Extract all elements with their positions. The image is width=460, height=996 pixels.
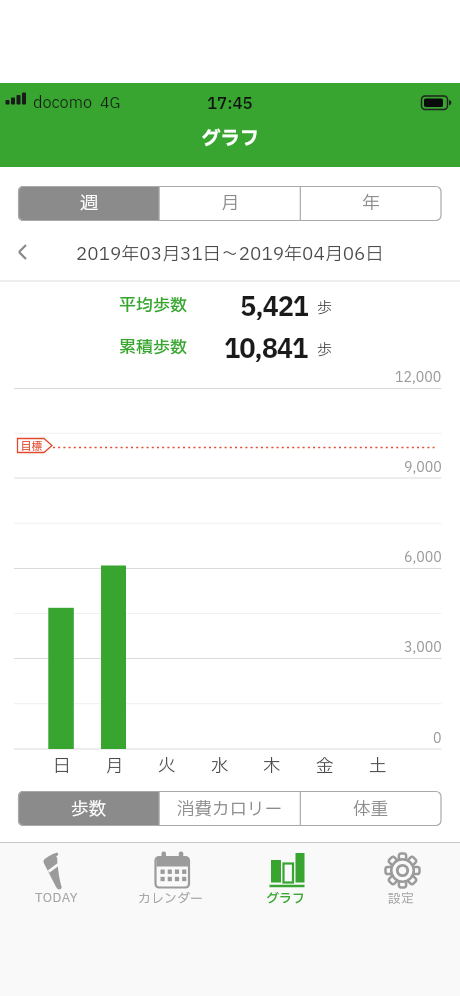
staticText: 9,000 — [404, 458, 442, 478]
staticText: 3,000 — [404, 638, 442, 658]
staticText: TODAY — [35, 889, 79, 904]
staticText: 10,841 — [224, 330, 308, 365]
staticText: 体重 — [353, 796, 388, 822]
staticText: 0 — [433, 729, 442, 749]
staticText: 設定 — [388, 889, 415, 904]
staticText: 日 — [53, 753, 71, 777]
staticText: 歩数 — [71, 796, 106, 822]
staticText: 消費カロリー — [177, 796, 282, 822]
staticText: 2019年03月31日〜2019年04月06日 — [76, 241, 384, 265]
staticText: カレンダー — [138, 889, 204, 904]
staticText: 累積歩数 — [119, 335, 187, 359]
staticText: 目標 — [21, 439, 42, 452]
staticText: 12,000 — [395, 368, 442, 388]
staticText: グラフ — [266, 889, 306, 904]
staticText: 土 — [369, 753, 387, 777]
staticText: 火 — [158, 753, 176, 777]
staticText: 月 — [106, 753, 124, 777]
staticText: 歩 — [317, 339, 333, 361]
staticText: 水 — [211, 753, 229, 777]
staticText: 17:45 — [207, 92, 253, 114]
staticText: 金 — [316, 753, 334, 777]
staticText: 6,000 — [404, 548, 442, 568]
staticText: docomo — [33, 92, 92, 114]
staticText: 歩 — [317, 297, 333, 319]
staticText: グラフ — [201, 124, 260, 153]
staticText: 5,421 — [240, 288, 308, 323]
staticText: 平均歩数 — [119, 293, 187, 317]
staticText: 年 — [362, 190, 380, 217]
staticText: 週 — [80, 190, 98, 217]
staticText: 月 — [221, 190, 239, 217]
staticText: 木 — [263, 753, 281, 777]
staticText: 4G — [100, 92, 121, 114]
